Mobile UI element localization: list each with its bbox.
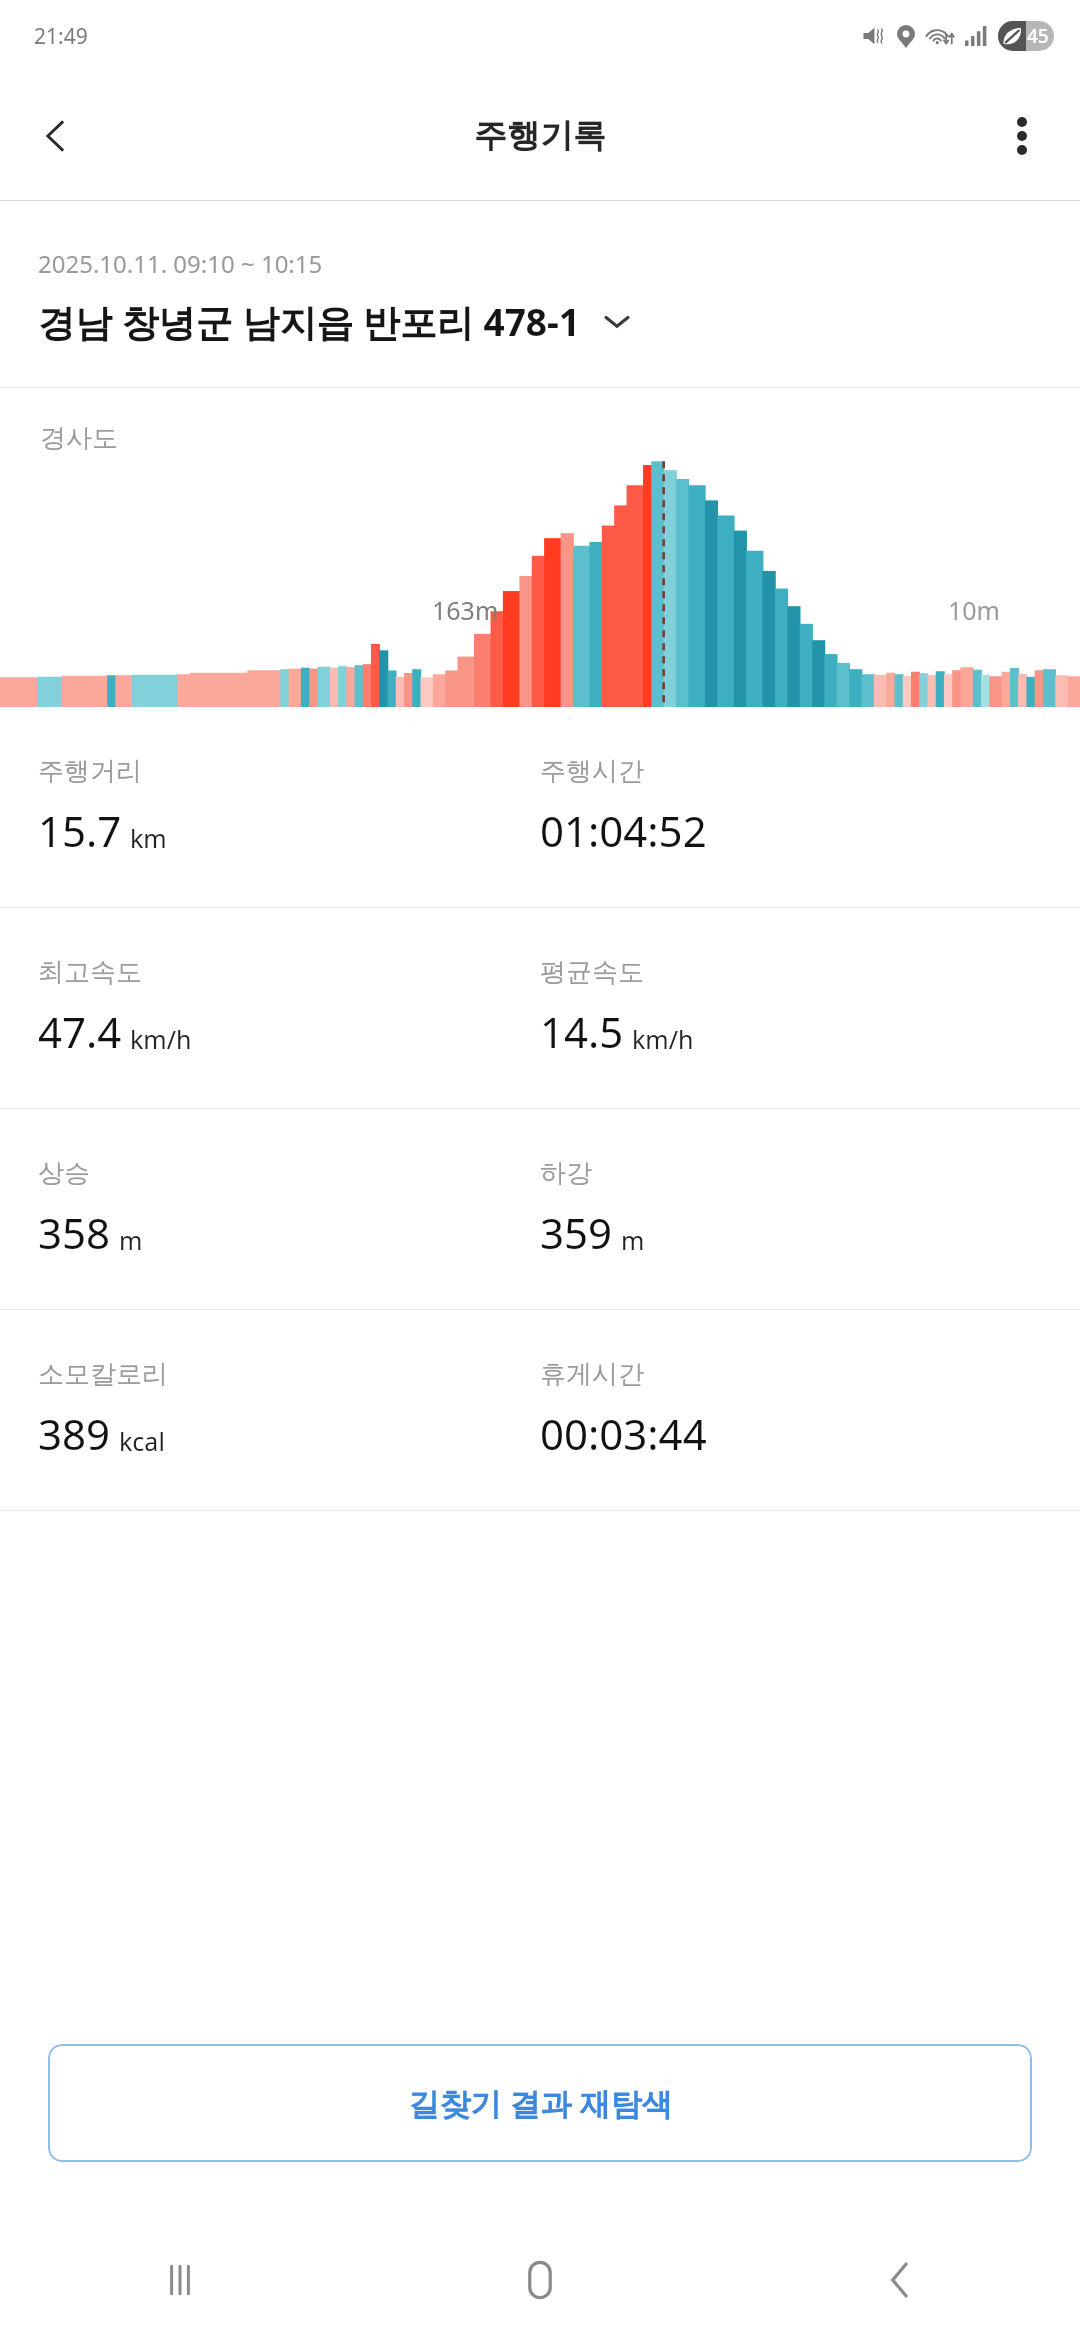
staticText: 2025.10.11. 09:10 ~ 10:15: [38, 247, 323, 280]
staticText: 14.5: [540, 1003, 624, 1060]
staticText: 01:04:52: [540, 802, 707, 859]
staticText: 주행기록: [474, 115, 606, 157]
staticText: 359: [540, 1204, 613, 1261]
staticText: 하강: [540, 1157, 592, 1190]
button[interactable]: Home: [360, 2220, 720, 2340]
staticText: 상승: [38, 1157, 90, 1190]
staticText: m: [119, 1223, 143, 1257]
staticText: 길찾기 결과 재탐색: [408, 2082, 673, 2124]
staticText: km: [130, 821, 167, 855]
button[interactable]: Recents: [0, 2220, 360, 2340]
staticText: 21:49: [34, 22, 88, 51]
staticText: 358: [38, 1204, 111, 1261]
button[interactable]: More options: [986, 100, 1058, 172]
staticText: 10m: [948, 593, 1000, 627]
staticText: 15.7: [38, 802, 122, 859]
staticText: 주행거리: [38, 755, 142, 788]
staticText: kcal: [119, 1424, 165, 1458]
staticText: 47.4: [38, 1003, 122, 1060]
staticText: 주행시간: [540, 755, 644, 788]
staticText: m: [621, 1223, 645, 1257]
staticText: 경사도: [40, 422, 118, 455]
staticText: 경남 창녕군 남지읍 반포리 478-1: [38, 296, 580, 347]
staticText: 389: [38, 1405, 111, 1462]
staticText: 최고속도: [38, 956, 142, 989]
staticText: 평균속도: [540, 956, 644, 989]
staticText: 휴게시간: [540, 1358, 644, 1391]
staticText: km/h: [632, 1022, 694, 1056]
button[interactable]: 2025.10.11. 09:10 ~ 10:15: [0, 201, 1080, 387]
staticText: 소모칼로리: [38, 1358, 168, 1391]
staticText: 00:03:44: [540, 1405, 707, 1462]
button[interactable]: Back: [720, 2220, 1080, 2340]
staticText: km/h: [130, 1022, 192, 1056]
button[interactable]: 길찾기 결과 재탐색: [48, 2044, 1032, 2162]
button[interactable]: Back: [20, 100, 92, 172]
staticText: 163m: [432, 593, 499, 627]
staticText: 45: [1027, 23, 1049, 49]
